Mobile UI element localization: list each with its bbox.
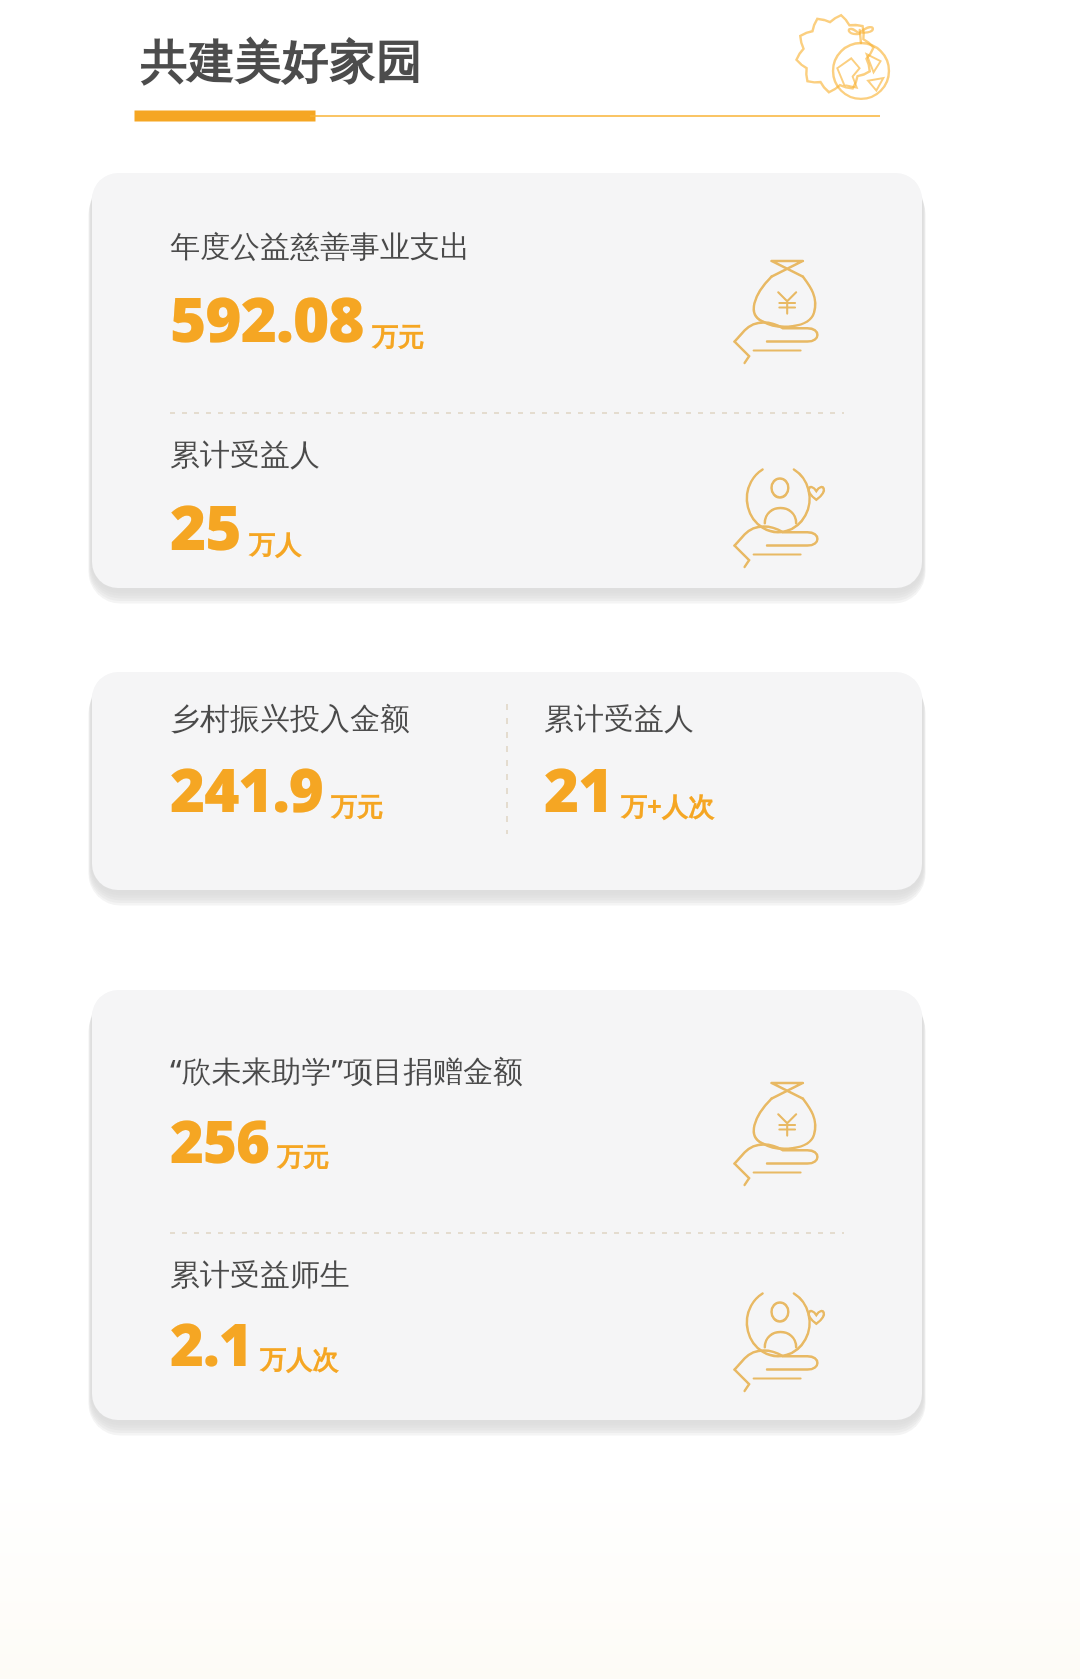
staticText: 累计受益师生 [170,1256,350,1294]
staticText: 25 [170,484,241,568]
staticText: 241.9 [170,748,323,830]
staticText: 2.1 [170,1304,252,1383]
staticText: “欣未来助学”项目捐赠金额 [170,1050,524,1091]
staticText: 累计受益人 [544,700,694,738]
button[interactable]: “欣未来助学”项目捐赠金额 [92,990,922,1420]
button[interactable]: 乡村振兴投入金额 [92,672,922,890]
staticText: 共建美好家园 [140,34,422,92]
staticText: 256 [170,1101,269,1180]
staticText: 万+人次 [621,788,714,824]
other: Sustainability [770,4,900,112]
staticText: 592.08 [170,276,364,360]
staticText: 万人次 [260,1344,338,1377]
staticText: 乡村振兴投入金额 [170,700,410,738]
staticText: 万元 [372,321,424,354]
button[interactable]: 年度公益慈善事业支出 [92,173,922,588]
staticText: 年度公益慈善事业支出 [170,228,470,266]
staticText: 万人 [249,529,301,562]
staticText: 21 [544,748,613,830]
staticText: 万元 [331,791,383,824]
staticText: 万元 [277,1141,329,1174]
staticText: 累计受益人 [170,436,320,474]
